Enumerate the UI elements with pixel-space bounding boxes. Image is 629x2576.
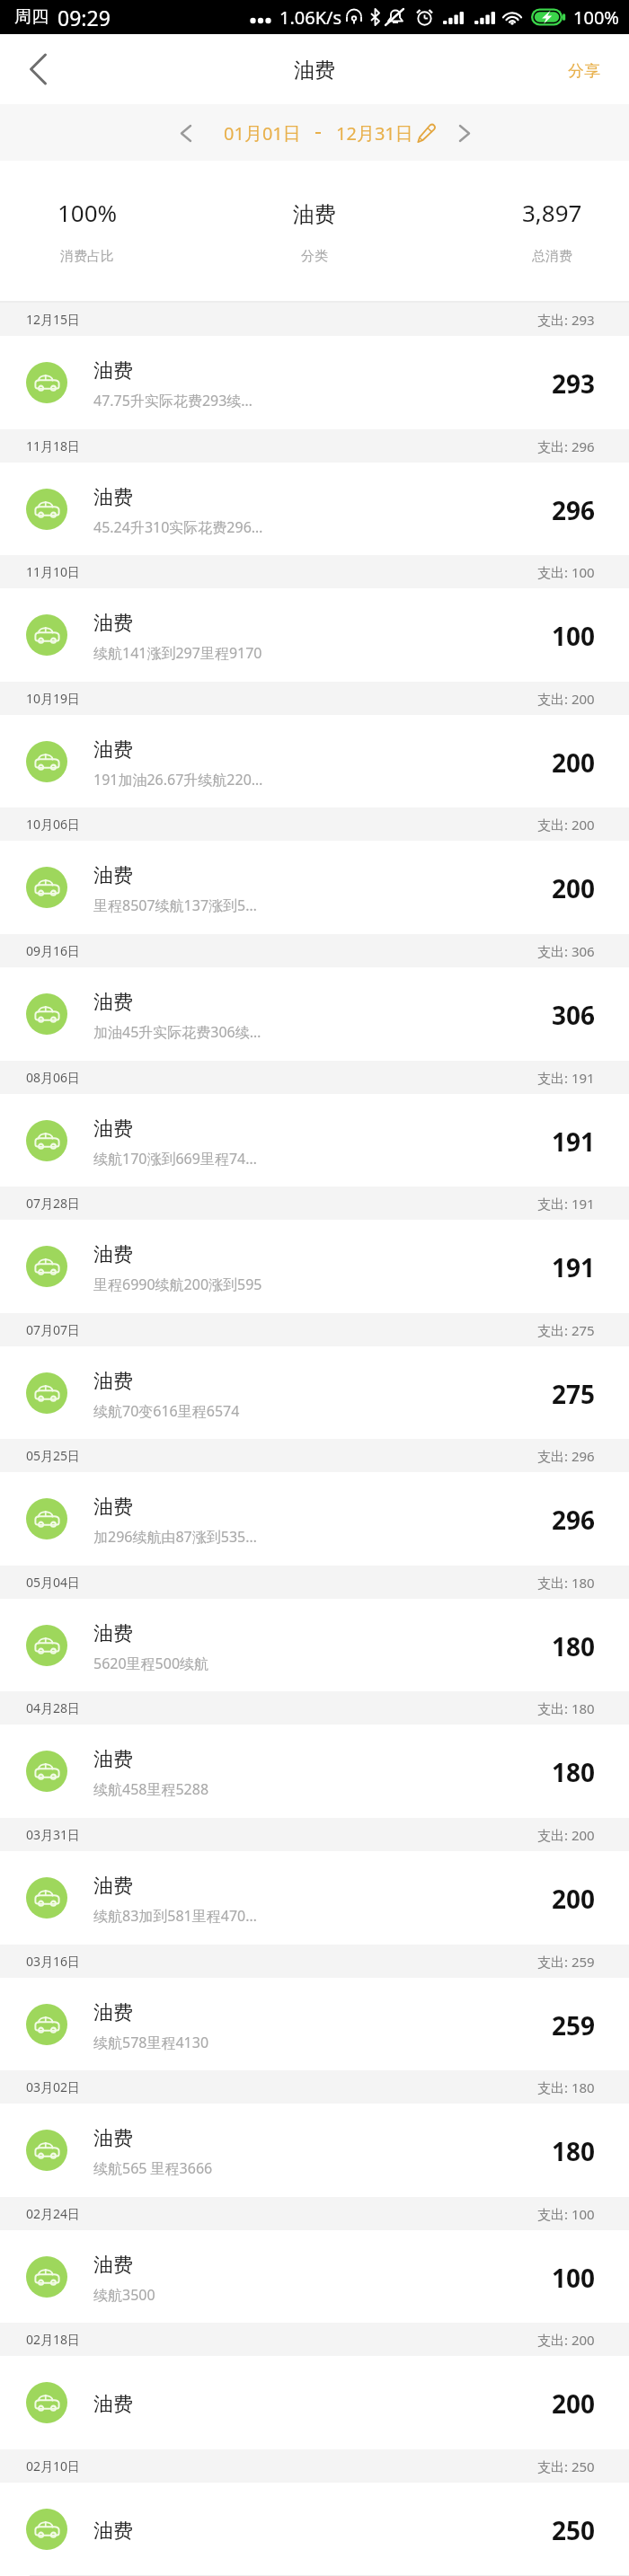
staticText: 油费 — [93, 1747, 133, 1772]
staticText: 03月02日 — [26, 2078, 81, 2095]
staticText: 293 — [552, 366, 596, 401]
staticText: 07月28日 — [26, 1195, 81, 1212]
button[interactable]: Previous period — [166, 110, 206, 155]
staticText: 油费 — [93, 2392, 133, 2417]
button[interactable]: 油费 — [0, 2356, 629, 2449]
staticText: 支出: 200 — [537, 816, 595, 834]
staticText: 加油45升实际花费306续… — [93, 1022, 261, 1042]
staticText: 油费 — [93, 2000, 133, 2025]
staticText: 03月16日 — [26, 1953, 81, 1970]
staticText: 10月19日 — [26, 690, 81, 707]
staticText: 油费 — [93, 990, 133, 1015]
staticText: 油费 — [93, 2126, 133, 2151]
staticText: 续航458里程5288 — [93, 1779, 209, 1799]
staticText: 油费 — [93, 1242, 133, 1267]
button[interactable]: Next period — [445, 110, 484, 155]
staticText: 100% — [573, 5, 619, 30]
staticText: 02月10日 — [26, 2457, 81, 2475]
staticText: 油费 — [93, 1116, 133, 1142]
staticText: 100% — [58, 197, 118, 228]
button[interactable]: 油费 — [0, 2104, 629, 2197]
staticText: 100 — [552, 2261, 596, 2295]
staticText: 油费 — [93, 358, 133, 384]
staticText: 100 — [552, 619, 596, 653]
staticText: 支出: 296 — [537, 1447, 595, 1465]
button[interactable]: 油费 — [0, 588, 629, 682]
staticText: 油费 — [93, 1369, 133, 1394]
staticText: 08月06日 — [26, 1069, 81, 1086]
staticText: 续航3500 — [93, 2285, 155, 2305]
staticText: 油费 — [93, 485, 133, 510]
staticText: 180 — [552, 1755, 596, 1789]
button[interactable]: 油费 — [0, 1094, 629, 1187]
staticText: 04月28日 — [26, 1699, 81, 1716]
button[interactable]: 油费 — [0, 1725, 629, 1818]
staticText: 01月01日 — [224, 121, 301, 146]
staticText: 支出: 100 — [537, 563, 595, 581]
button[interactable]: 01月01日 — [224, 110, 436, 155]
staticText: 续航565 里程3666 — [93, 2158, 213, 2178]
button[interactable]: 油费 — [0, 841, 629, 934]
staticText: 09:29 — [58, 4, 111, 31]
button[interactable]: Back — [0, 34, 75, 104]
staticText: 油费 — [93, 2519, 133, 2544]
button[interactable]: 油费 — [0, 463, 629, 555]
staticText: 支出: 275 — [537, 1321, 595, 1339]
staticText: 支出: 100 — [537, 2205, 595, 2223]
staticText: 消费占比 — [60, 248, 114, 265]
staticText: 12月31日 — [336, 121, 413, 146]
staticText: 47.75升实际花费293续… — [93, 391, 253, 410]
staticText: 275 — [552, 1377, 596, 1411]
button[interactable]: 油费 — [0, 336, 629, 429]
staticText: 02月18日 — [26, 2331, 81, 2348]
staticText: 02月24日 — [26, 2205, 81, 2222]
staticText: 191 — [552, 1250, 596, 1284]
staticText: 油费 — [294, 57, 335, 84]
staticText: 支出: 250 — [537, 2457, 595, 2475]
staticText: 油费 — [93, 1495, 133, 1520]
staticText: 续航578里程4130 — [93, 2033, 209, 2052]
staticText: 10月06日 — [26, 816, 81, 833]
staticText: 油费 — [93, 611, 133, 636]
staticText: 支出: 293 — [537, 311, 595, 329]
button[interactable]: 油费 — [0, 1599, 629, 1691]
button[interactable]: 油费 — [0, 967, 629, 1061]
staticText: 200 — [552, 2386, 596, 2421]
staticText: 200 — [552, 1882, 596, 1916]
button[interactable]: 油费 — [0, 1978, 629, 2070]
staticText: 油费 — [93, 863, 133, 888]
staticText: 191加油26.67升续航220… — [93, 770, 263, 790]
staticText: 支出: 191 — [537, 1069, 595, 1087]
staticText: 续航70变616里程6574 — [93, 1401, 240, 1421]
staticText: 续航170涨到669里程74… — [93, 1149, 257, 1169]
button[interactable]: 油费 — [0, 1346, 629, 1439]
button[interactable]: 油费 — [0, 1851, 629, 1945]
staticText: 05月25日 — [26, 1447, 81, 1464]
staticText: 支出: 180 — [537, 1699, 595, 1717]
button[interactable]: 油费 — [0, 2483, 629, 2576]
button[interactable]: 油费 — [0, 2230, 629, 2323]
staticText: 支出: 296 — [537, 437, 595, 455]
staticText: 油费 — [93, 2253, 133, 2278]
staticText: 11月18日 — [26, 437, 81, 454]
button[interactable]: 油费 — [0, 1472, 629, 1566]
staticText: 加296续航由87涨到535… — [93, 1527, 257, 1547]
staticText: 里程6990续航200涨到595 — [93, 1275, 262, 1294]
staticText: 分类 — [301, 248, 328, 265]
staticText: 支出: 200 — [537, 1826, 595, 1844]
staticText: 油费 — [293, 201, 336, 228]
staticText: 45.24升310实际花费296… — [93, 517, 263, 537]
staticText: 支出: 306 — [537, 942, 595, 960]
button[interactable]: 油费 — [0, 1220, 629, 1313]
button[interactable]: 分享 — [541, 34, 629, 104]
staticText: 支出: 180 — [537, 1574, 595, 1592]
staticText: 3,897 — [522, 197, 582, 228]
staticText: 油费 — [93, 1874, 133, 1899]
staticText: 支出: 200 — [537, 690, 595, 708]
staticText: 周四 — [14, 6, 49, 28]
staticText: 05月04日 — [26, 1574, 81, 1591]
staticText: 12月15日 — [26, 311, 81, 328]
staticText: 1.06K/s — [279, 5, 342, 30]
staticText: 支出: 200 — [537, 2331, 595, 2349]
button[interactable]: 油费 — [0, 715, 629, 807]
